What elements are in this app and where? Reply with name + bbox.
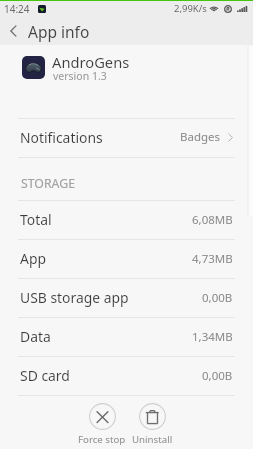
staticText: Data: [20, 327, 51, 346]
staticText: 2,99K/s: [174, 2, 207, 15]
button[interactable]: Force stop: [72, 403, 132, 446]
staticText: SD card: [20, 366, 70, 385]
staticText: 0,00B: [202, 368, 233, 384]
staticText: App: [20, 249, 46, 268]
button[interactable]: SD card: [0, 356, 253, 395]
staticText: 0,00B: [202, 290, 233, 306]
button[interactable]: Back: [0, 17, 27, 45]
staticText: Notifications: [20, 128, 103, 147]
button[interactable]: Uninstall: [122, 403, 182, 446]
button[interactable]: Data: [0, 317, 253, 356]
staticText: version 1.3: [53, 69, 107, 83]
staticText: AndroGens: [52, 52, 130, 72]
staticText: Force stop: [78, 433, 126, 446]
button[interactable]: App: [0, 239, 253, 278]
staticText: Badges: [180, 129, 221, 145]
staticText: Uninstall: [132, 433, 173, 446]
staticText: 6,08MB: [192, 212, 233, 228]
staticText: USB storage app: [20, 288, 129, 307]
staticText: 14:24: [4, 2, 30, 16]
staticText: Total: [20, 210, 52, 229]
staticText: STORAGE: [21, 175, 75, 192]
staticText: 4,73MB: [192, 251, 233, 267]
staticText: 1,34MB: [192, 329, 233, 345]
staticText: App info: [28, 21, 90, 42]
button[interactable]: Notifications: [0, 118, 253, 156]
button[interactable]: Total: [0, 200, 253, 239]
button[interactable]: USB storage app: [0, 278, 253, 317]
